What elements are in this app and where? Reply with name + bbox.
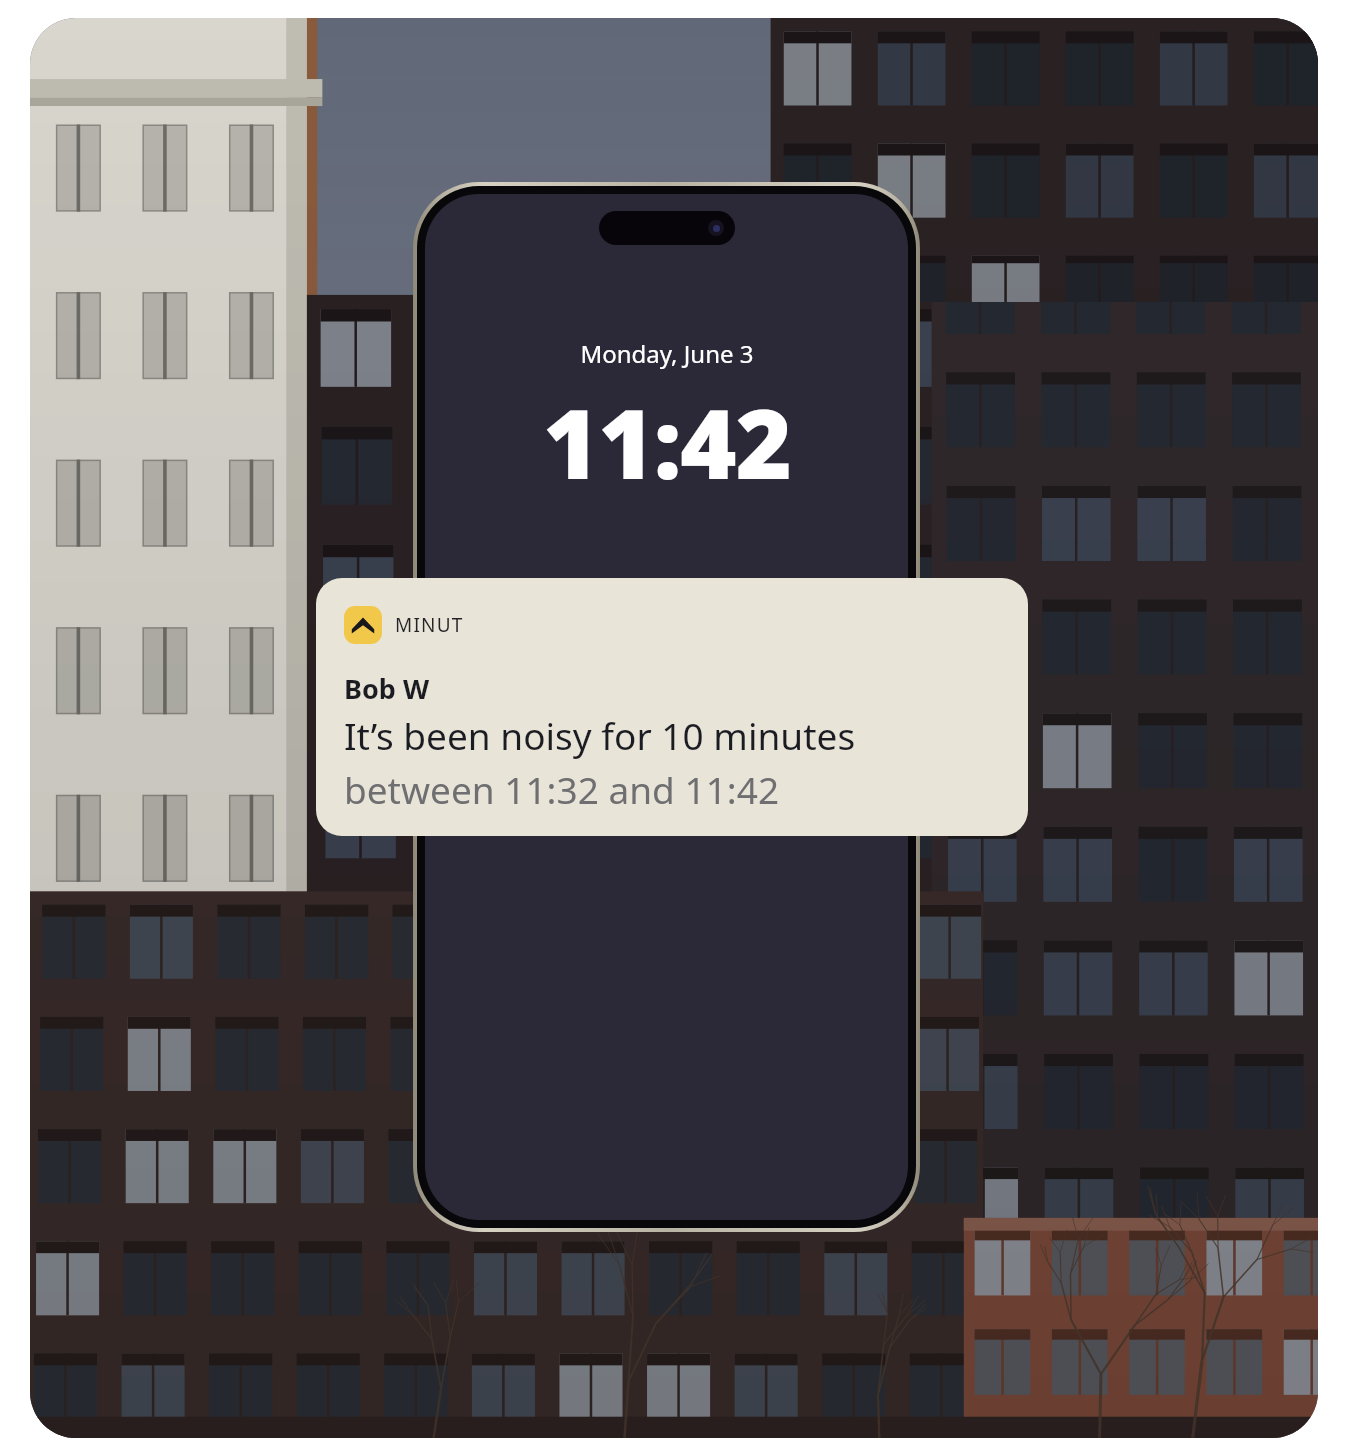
staticText: Bob W: [344, 670, 430, 707]
other: Minut app icon: [344, 606, 382, 644]
staticText: 11:42: [543, 376, 791, 507]
button[interactable]: Minut app icon: [316, 578, 1028, 836]
staticText: MINUT: [395, 612, 464, 638]
staticText: between 11:32 and 11:42: [344, 764, 780, 812]
staticText: It’s been noisy for 10 minutes: [344, 710, 856, 760]
staticText: Monday, June 3: [580, 337, 754, 370]
